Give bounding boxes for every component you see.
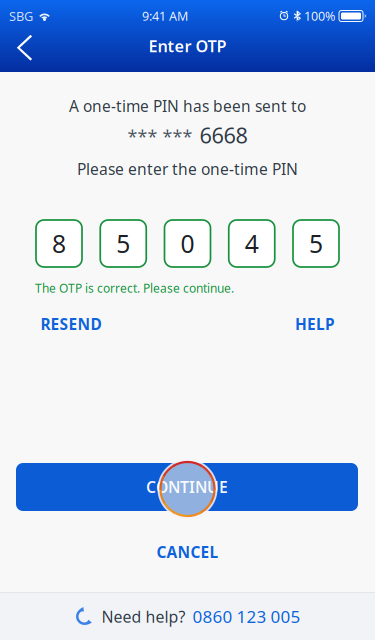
staticText: Enter OTP	[148, 35, 226, 57]
button[interactable]: Need help?	[0, 593, 375, 640]
staticText: 100%	[304, 7, 335, 25]
staticText: CONTINUE	[146, 476, 228, 498]
button[interactable]: RESEND	[32, 312, 110, 336]
button[interactable]	[16, 463, 358, 511]
staticText: 0	[180, 227, 194, 260]
staticText: RESEND	[40, 313, 101, 335]
staticText: 5	[309, 227, 323, 260]
button[interactable]: Back	[5, 28, 47, 68]
button[interactable]: HELP	[286, 312, 344, 336]
staticText: 9:41 AM	[142, 7, 188, 25]
staticText: 4	[245, 227, 259, 260]
staticText: The OTP is correct. Please continue.	[35, 280, 234, 296]
staticText: HELP	[295, 313, 335, 335]
button[interactable]: CANCEL	[127, 539, 247, 565]
staticText: 5	[116, 227, 130, 260]
staticText: CANCEL	[156, 541, 218, 563]
staticText: 6668	[199, 120, 247, 150]
staticText: Please enter the one-time PIN	[77, 158, 298, 180]
staticText: Need help?	[101, 606, 185, 627]
staticText: 0860 123 005	[192, 605, 300, 628]
staticText: SBG	[9, 7, 33, 25]
staticText: 8	[52, 227, 66, 260]
staticText: *** ***	[127, 124, 192, 149]
staticText: A one-time PIN has been sent to	[69, 95, 306, 117]
